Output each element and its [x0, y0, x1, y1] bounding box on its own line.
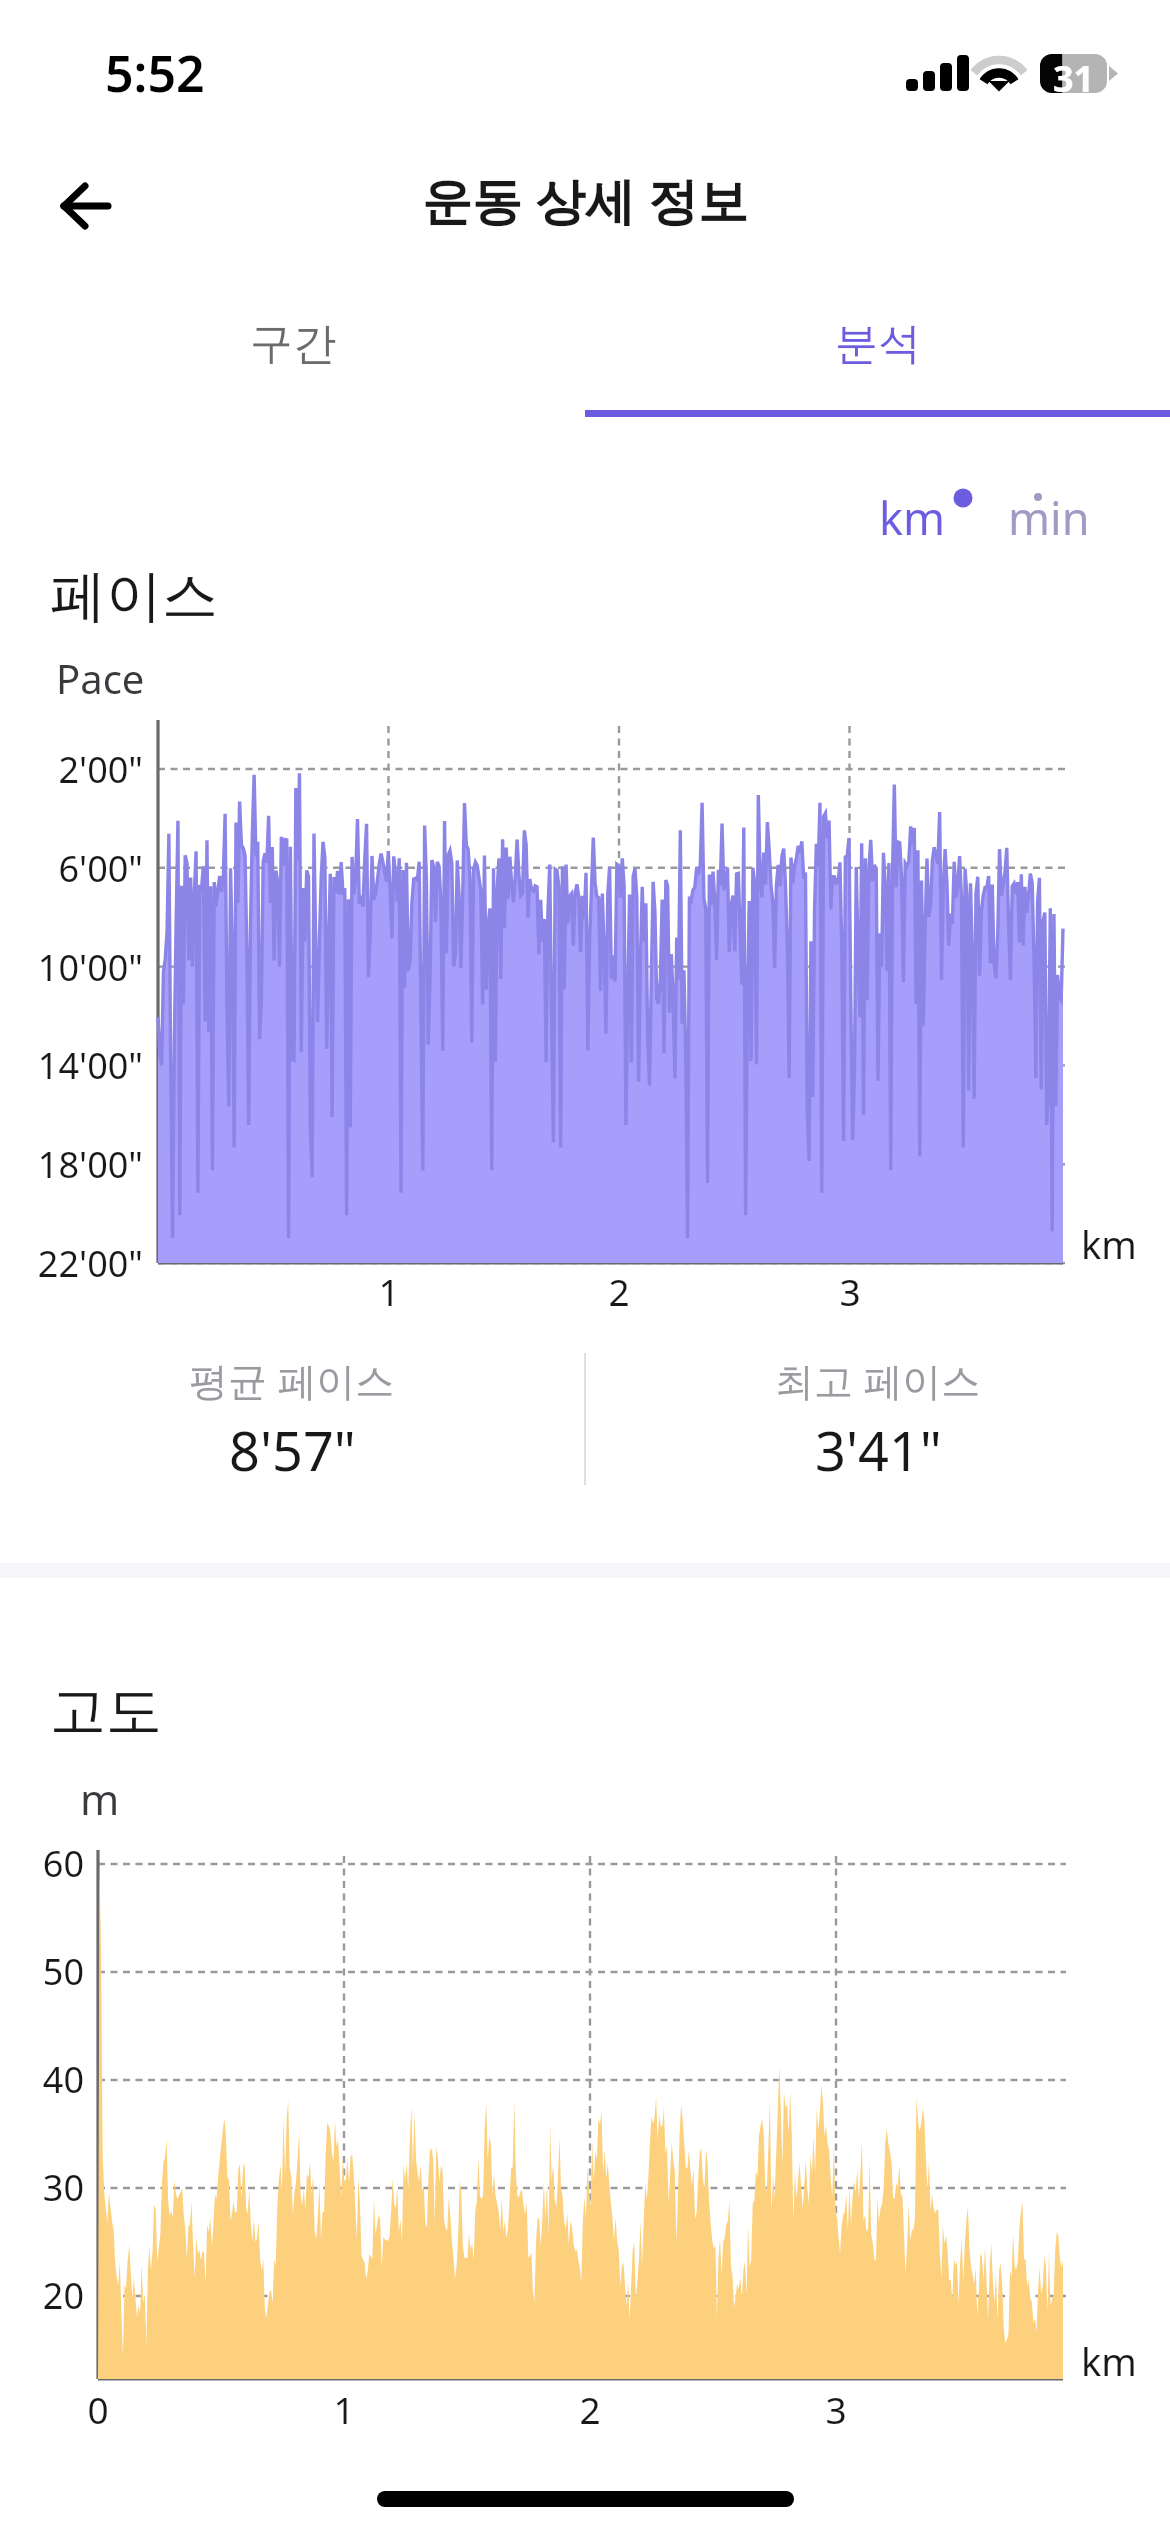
button[interactable]: 분석	[585, 270, 1170, 410]
button[interactable]: Back	[24, 144, 136, 256]
staticText: 18'00"	[0, 1140, 143, 1189]
staticText: 고도	[50, 1676, 162, 1747]
button[interactable]: km	[879, 487, 946, 548]
staticText: 3'41"	[815, 1413, 942, 1487]
staticText: 분석	[835, 317, 921, 371]
staticText: 8'57"	[229, 1413, 356, 1487]
staticText: 14'00"	[0, 1041, 143, 1090]
staticText: 1	[359, 1266, 419, 1316]
button[interactable]: 구간	[0, 270, 585, 410]
staticText: 31	[1053, 54, 1095, 103]
button[interactable]: min	[1008, 487, 1090, 548]
staticText: km	[1081, 2335, 1137, 2387]
staticText: 10'00"	[0, 943, 143, 992]
staticText: 60	[0, 1839, 84, 1888]
staticText: km	[1081, 1218, 1137, 1270]
staticText: 최고 페이스	[775, 1353, 981, 1406]
staticText: m	[80, 1770, 120, 1827]
staticText: 3	[806, 2384, 866, 2434]
staticText: 페이스	[50, 561, 218, 632]
staticText: Pace	[56, 651, 145, 705]
staticText: 2	[589, 1266, 649, 1316]
staticText: 평균 페이스	[189, 1353, 395, 1406]
staticText: 50	[0, 1947, 84, 1996]
staticText: 22'00"	[0, 1239, 143, 1288]
staticText: 6'00"	[0, 844, 143, 893]
staticText: 2'00"	[0, 745, 143, 794]
staticText: 20	[0, 2271, 84, 2320]
staticText: 2	[560, 2384, 620, 2434]
staticText: 40	[0, 2055, 84, 2104]
staticText: 1	[314, 2384, 374, 2434]
staticText: 운동 상세 정보	[422, 166, 748, 234]
staticText: 구간	[250, 317, 336, 371]
staticText: 0	[68, 2384, 128, 2434]
staticText: 5:52	[105, 39, 205, 107]
staticText: 3	[820, 1266, 880, 1316]
staticText: 30	[0, 2163, 84, 2212]
